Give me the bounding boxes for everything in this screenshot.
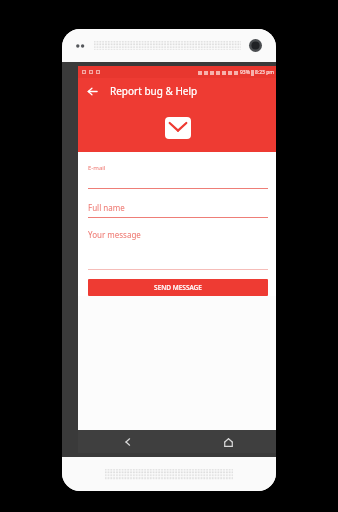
button[interactable]: SEND MESSAGE [88,279,268,296]
staticText: 93% [240,69,250,76]
staticText: E-mail [88,164,106,172]
button[interactable]: Home [217,431,239,453]
button[interactable]: Back [117,431,139,453]
staticText: Your message [88,229,141,240]
staticText: SEND MESSAGE [154,283,202,292]
button[interactable]: Back [82,81,102,101]
staticText: Report bug & Help [110,84,198,98]
staticText: Full name [88,202,125,213]
staticText: 8:23 pm [255,69,275,76]
